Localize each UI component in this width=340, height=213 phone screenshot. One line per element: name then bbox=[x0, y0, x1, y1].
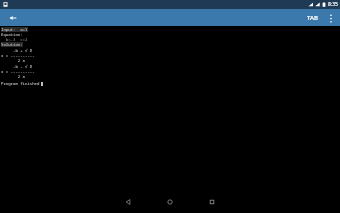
button[interactable]: More options bbox=[325, 10, 337, 26]
button[interactable]: TAB bbox=[304, 12, 321, 24]
staticText: Program finished bbox=[1, 81, 40, 86]
staticText: -b + √ D bbox=[1, 48, 33, 53]
staticText: Equation: bbox=[1, 32, 23, 37]
staticText: Solution: bbox=[1, 42, 23, 47]
staticText: x = ---------- bbox=[1, 69, 35, 74]
staticText: TAB bbox=[307, 14, 318, 22]
staticText: 8:35 bbox=[328, 1, 338, 8]
staticText: -b - √ D bbox=[1, 64, 33, 69]
staticText: 2 a bbox=[1, 74, 25, 79]
button[interactable]: Back bbox=[107, 190, 149, 213]
button[interactable]: Home bbox=[149, 190, 191, 213]
staticText: x = ---------- bbox=[1, 53, 35, 58]
staticText: b=-3 c=2 bbox=[1, 37, 28, 42]
staticText: Input: a=1 bbox=[1, 27, 28, 32]
button[interactable]: Navigate up bbox=[6, 11, 20, 25]
staticText: 2 a bbox=[1, 58, 25, 63]
button[interactable]: Recent apps bbox=[191, 190, 233, 213]
